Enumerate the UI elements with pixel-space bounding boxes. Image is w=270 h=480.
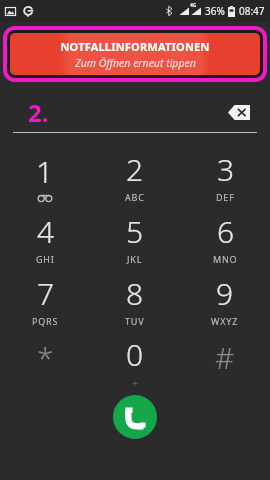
staticText: TUV bbox=[125, 315, 145, 327]
button[interactable]: 9 bbox=[180, 269, 270, 331]
staticText: GHI bbox=[36, 253, 55, 265]
staticText: 4 bbox=[37, 211, 55, 252]
staticText: PQRS bbox=[32, 315, 59, 327]
staticText: 36% bbox=[205, 4, 225, 18]
button[interactable]: 0 bbox=[90, 331, 180, 393]
staticText: 2 bbox=[126, 149, 144, 190]
staticText: 3 bbox=[217, 149, 235, 190]
staticText: 9 bbox=[216, 273, 234, 314]
staticText: ABC bbox=[125, 191, 145, 203]
staticText: * bbox=[37, 337, 54, 378]
button[interactable]: 8 bbox=[90, 269, 180, 331]
button[interactable]: # bbox=[180, 331, 270, 393]
button[interactable]: 5 bbox=[90, 207, 180, 269]
button[interactable]: 3 bbox=[180, 145, 270, 207]
staticText: 08:47 bbox=[239, 4, 265, 18]
button[interactable]: Anrufen bbox=[113, 395, 157, 439]
staticText: + bbox=[132, 376, 138, 390]
staticText: DEF bbox=[216, 191, 235, 203]
staticText: Zum Öffnen erneut tippen bbox=[75, 56, 196, 70]
button[interactable]: Löschen bbox=[222, 99, 256, 125]
staticText: JKL bbox=[127, 253, 143, 265]
staticText: WXYZ bbox=[211, 315, 239, 327]
staticText: 0 bbox=[126, 334, 144, 375]
button[interactable]: 7 bbox=[0, 269, 90, 331]
staticText: 7 bbox=[37, 273, 55, 314]
button[interactable]: 1 bbox=[0, 145, 90, 207]
staticText: 1 bbox=[36, 151, 54, 192]
staticText: 5 bbox=[126, 211, 144, 252]
button[interactable]: 4 bbox=[0, 207, 90, 269]
staticText: 4G bbox=[190, 2, 197, 9]
staticText: 6 bbox=[217, 211, 235, 252]
staticText: 2. bbox=[28, 96, 49, 129]
button[interactable]: 2 bbox=[90, 145, 180, 207]
button[interactable]: NOTFALLINFORMATIONEN bbox=[10, 33, 260, 75]
staticText: # bbox=[215, 337, 235, 378]
staticText: 8 bbox=[126, 273, 144, 314]
button[interactable]: 6 bbox=[180, 207, 270, 269]
button[interactable]: * bbox=[0, 331, 90, 393]
staticText: NOTFALLINFORMATIONEN bbox=[60, 39, 210, 54]
staticText: MNO bbox=[213, 253, 238, 265]
